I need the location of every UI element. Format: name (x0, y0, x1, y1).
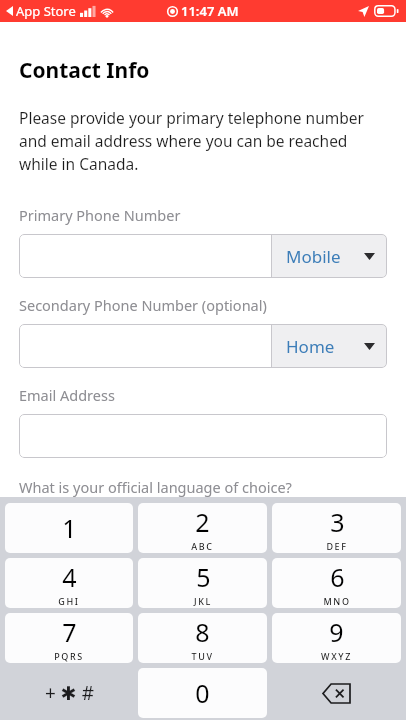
staticText: 7 (62, 615, 77, 649)
staticText: 1 (62, 511, 77, 545)
staticText: MNO (323, 595, 351, 607)
staticText: 5 (196, 560, 211, 594)
button[interactable]: 8 (138, 613, 267, 663)
staticText: Mobile (286, 245, 341, 268)
staticText: 4 (62, 560, 77, 594)
staticText: What is your official language of choice… (19, 477, 292, 497)
staticText: 8 (195, 615, 210, 649)
button[interactable]: + ✱ # (5, 668, 133, 718)
button[interactable]: 3 (272, 503, 401, 553)
staticText: Please provide your primary telephone nu… (19, 107, 387, 175)
staticText: ABC (191, 540, 214, 552)
button[interactable]: 2 (138, 503, 267, 553)
staticText: Email Address (19, 385, 115, 405)
staticText: App Store (16, 2, 76, 20)
staticText: Primary Phone Number (19, 205, 181, 225)
staticText: Secondary Phone Number (optional) (19, 295, 267, 315)
staticText: GHI (58, 595, 80, 607)
staticText: English (33, 517, 91, 540)
button[interactable]: 1 (5, 503, 133, 553)
staticText: 11:47 AM (181, 2, 239, 20)
button[interactable] (19, 234, 271, 278)
staticText: 0 (195, 676, 210, 710)
button[interactable]: English (19, 506, 387, 550)
staticText: TUV (191, 650, 214, 662)
button[interactable]: 7 (5, 613, 133, 663)
button[interactable] (19, 414, 387, 458)
staticText: 9 (329, 615, 344, 649)
button[interactable]: 0 (138, 668, 267, 718)
staticText: JKL (194, 595, 212, 607)
button[interactable]: 9 (272, 613, 401, 663)
button[interactable]: 6 (272, 558, 401, 608)
staticText: + ✱ # (45, 680, 94, 706)
staticText: 6 (330, 560, 345, 594)
staticText: Contact Info (19, 56, 150, 85)
button[interactable] (19, 324, 271, 368)
staticText: Home (286, 335, 335, 358)
staticText: WXYZ (321, 650, 352, 662)
staticText: 2 (195, 505, 210, 539)
button[interactable]: Delete (272, 668, 401, 718)
button[interactable]: 4 (5, 558, 133, 608)
button[interactable]: Home (272, 324, 387, 368)
button[interactable]: Mobile (272, 234, 387, 278)
button[interactable]: 5 (138, 558, 267, 608)
staticText: 3 (330, 505, 345, 539)
staticText: PQRS (54, 650, 84, 662)
staticText: DEF (326, 540, 348, 552)
